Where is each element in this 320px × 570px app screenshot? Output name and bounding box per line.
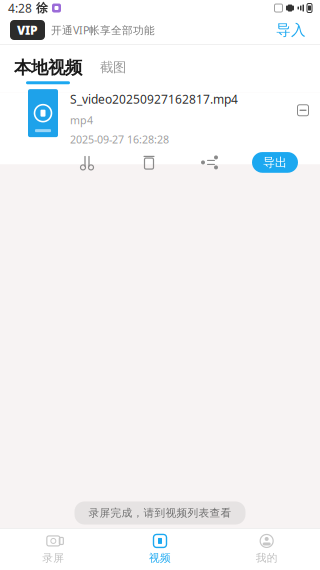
button[interactable]: 剪辑	[70, 151, 104, 173]
staticText: 本地视频	[14, 57, 82, 78]
button[interactable]: 本地视频	[14, 57, 82, 84]
staticText: 视频	[149, 551, 171, 564]
staticText: 2025-09-27 16:28:28	[70, 132, 169, 146]
button[interactable]: VIP	[10, 20, 155, 40]
staticText: 导入	[276, 21, 306, 39]
staticText: 徐	[36, 1, 48, 15]
button[interactable]: 我的	[213, 528, 320, 570]
staticText: VIP	[17, 22, 38, 38]
staticText: 我的	[256, 551, 278, 564]
staticText: 截图	[100, 59, 126, 75]
staticText: 导出	[263, 155, 287, 170]
button[interactable]: 导入	[272, 18, 310, 42]
button[interactable]: 分享	[194, 151, 228, 173]
staticText: 录屏	[42, 551, 64, 564]
button[interactable]: 视频	[107, 528, 213, 570]
button[interactable]: 截图	[100, 57, 126, 81]
button[interactable]: 删除	[132, 151, 166, 173]
staticText: 4:28	[8, 0, 32, 16]
staticText: 录屏完成，请到视频列表查看	[88, 506, 231, 519]
button[interactable]: 录屏	[0, 528, 107, 570]
staticText: mp4	[70, 113, 93, 127]
staticText: S_video20250927162817.mp4	[70, 91, 238, 107]
staticText: 开通VIP帐享全部功能	[51, 23, 155, 37]
button[interactable]: 编辑	[292, 99, 314, 121]
button[interactable]: 导出	[252, 152, 298, 173]
